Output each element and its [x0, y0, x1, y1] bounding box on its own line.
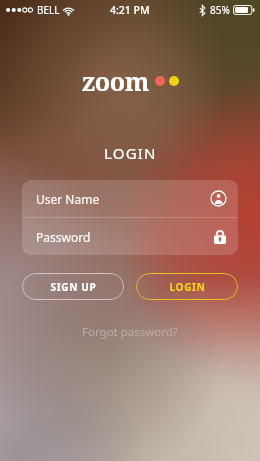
button[interactable]: SIGN UP	[22, 273, 124, 300]
other: User name	[211, 191, 226, 206]
staticText: BELL	[37, 3, 60, 17]
button[interactable]: Forgot password?	[74, 320, 186, 344]
staticText: Password	[36, 229, 214, 245]
staticText: LOGIN	[104, 143, 157, 163]
staticText: SIGN UP	[50, 280, 97, 294]
staticText: User Name	[36, 191, 211, 207]
staticText: 85%	[210, 3, 230, 17]
other: Password	[214, 229, 226, 244]
button[interactable]: User Name	[22, 180, 238, 217]
staticText: LOGIN	[169, 280, 206, 294]
staticText: zoom	[82, 64, 149, 98]
staticText: Forgot password?	[82, 324, 178, 340]
staticText: 4:21 PM	[110, 3, 150, 17]
button[interactable]: LOGIN	[136, 273, 238, 300]
button[interactable]: Password	[22, 218, 238, 255]
